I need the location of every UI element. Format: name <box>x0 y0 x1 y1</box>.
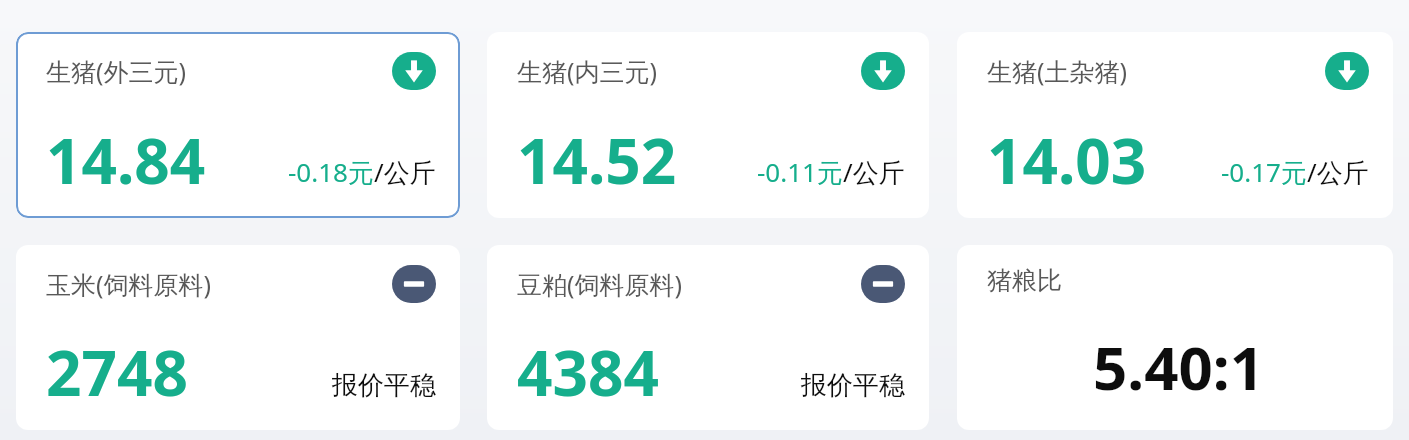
button[interactable]: Price down <box>1325 52 1369 90</box>
button[interactable]: 生猪(土杂猪) <box>957 32 1393 218</box>
staticText: 生猪(土杂猪) <box>987 54 1128 88</box>
staticText: 5.40:1 <box>1093 326 1264 408</box>
staticText: 报价平稳 <box>801 369 905 402</box>
button[interactable]: 猪粮比 <box>957 245 1393 430</box>
staticText: -0.17元/公斤 <box>1221 154 1369 190</box>
staticText: 报价平稳 <box>332 369 436 402</box>
button[interactable]: Price down <box>861 52 905 90</box>
staticText: -0.11元/公斤 <box>757 154 905 190</box>
button[interactable]: 玉米(饲料原料) <box>16 245 460 430</box>
button[interactable]: Price unchanged <box>861 265 905 303</box>
staticText: 豆粕(饲料原料) <box>517 267 683 301</box>
staticText: 14.84 <box>46 118 206 202</box>
staticText: 猪粮比 <box>987 265 1062 296</box>
staticText: 4384 <box>517 330 659 414</box>
staticText: 14.52 <box>517 118 677 202</box>
staticText: 14.03 <box>987 118 1147 202</box>
staticText: 2748 <box>46 330 188 414</box>
staticText: 生猪(外三元) <box>46 54 187 88</box>
button[interactable]: Price down <box>392 52 436 90</box>
button[interactable]: 生猪(外三元) <box>16 32 460 218</box>
button[interactable]: Price unchanged <box>392 265 436 303</box>
button[interactable]: 豆粕(饲料原料) <box>487 245 929 430</box>
staticText: -0.18元/公斤 <box>288 154 436 190</box>
button[interactable]: 生猪(内三元) <box>487 32 929 218</box>
staticText: 玉米(饲料原料) <box>46 267 212 301</box>
staticText: 生猪(内三元) <box>517 54 658 88</box>
